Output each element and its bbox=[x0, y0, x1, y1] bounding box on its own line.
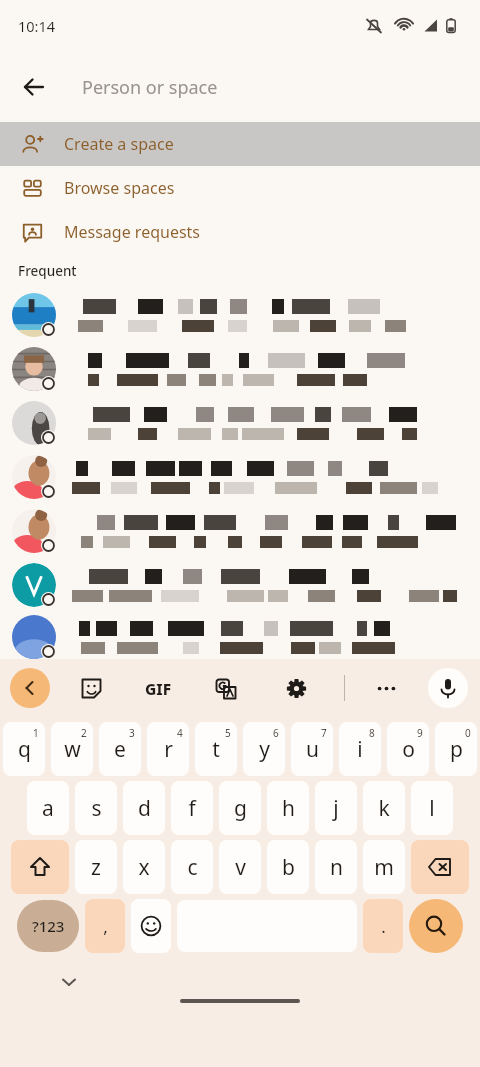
staticText: Frequent bbox=[18, 262, 77, 280]
staticText: GIF bbox=[145, 678, 172, 699]
button[interactable]: j bbox=[315, 781, 357, 835]
staticText: f bbox=[188, 794, 196, 823]
button[interactable]: l bbox=[411, 781, 453, 835]
staticText: 7 bbox=[321, 726, 327, 740]
button[interactable]: k bbox=[363, 781, 405, 835]
staticText: p bbox=[450, 735, 463, 764]
staticText: Create a space bbox=[64, 133, 174, 155]
button[interactable]: Back bbox=[8, 61, 60, 113]
staticText: s bbox=[91, 794, 102, 823]
button[interactable]: v bbox=[219, 840, 261, 894]
staticText: m bbox=[374, 853, 394, 882]
button[interactable] bbox=[0, 396, 480, 450]
staticText: c bbox=[187, 853, 198, 882]
button[interactable]: , bbox=[85, 899, 125, 953]
button[interactable]: . bbox=[363, 899, 403, 953]
staticText: Message requests bbox=[64, 221, 201, 243]
button[interactable] bbox=[0, 342, 480, 396]
staticText: n bbox=[330, 853, 343, 882]
staticText: r bbox=[164, 735, 173, 764]
other: Shift bbox=[11, 840, 69, 894]
button[interactable]: Emoji bbox=[131, 899, 171, 953]
button[interactable]: Search bbox=[409, 899, 463, 953]
button[interactable]: p bbox=[435, 722, 477, 776]
staticText: k bbox=[378, 794, 390, 823]
staticText: i bbox=[357, 735, 363, 764]
button[interactable]: More options bbox=[368, 670, 404, 706]
other: Emoji bbox=[131, 899, 171, 953]
staticText: ?123 bbox=[32, 916, 65, 936]
button[interactable]: Browse spaces bbox=[0, 166, 480, 210]
button[interactable]: x bbox=[123, 840, 165, 894]
staticText: o bbox=[402, 735, 415, 764]
button[interactable]: r bbox=[147, 722, 189, 776]
button[interactable]: q bbox=[3, 722, 45, 776]
staticText: 0 bbox=[465, 726, 471, 740]
button[interactable]: Create a space bbox=[0, 122, 480, 166]
button[interactable]: GIF bbox=[138, 668, 178, 708]
button[interactable]: s bbox=[75, 781, 117, 835]
staticText: 9 bbox=[417, 726, 423, 740]
staticText: 2 bbox=[81, 726, 87, 740]
button[interactable]: Person or space bbox=[82, 52, 480, 122]
staticText: 8 bbox=[369, 726, 375, 740]
button[interactable]: c bbox=[171, 840, 213, 894]
staticText: a bbox=[42, 794, 54, 823]
staticText: Browse spaces bbox=[64, 177, 175, 199]
other: Backspace bbox=[411, 840, 469, 894]
staticText: e bbox=[114, 735, 126, 764]
staticText: z bbox=[91, 853, 101, 882]
button[interactable]: f bbox=[171, 781, 213, 835]
button[interactable]: o bbox=[387, 722, 429, 776]
staticText: y bbox=[259, 735, 270, 764]
staticText: 6 bbox=[273, 726, 279, 740]
button[interactable]: Translate bbox=[207, 670, 243, 706]
button[interactable]: g bbox=[219, 781, 261, 835]
button[interactable]: y bbox=[243, 722, 285, 776]
staticText: 4 bbox=[177, 726, 183, 740]
button[interactable]: e bbox=[99, 722, 141, 776]
staticText: j bbox=[333, 794, 339, 823]
button[interactable]: Hide keyboard bbox=[54, 967, 84, 997]
button[interactable] bbox=[0, 612, 480, 662]
button[interactable]: z bbox=[75, 840, 117, 894]
button[interactable]: m bbox=[363, 840, 405, 894]
button[interactable]: a bbox=[27, 781, 69, 835]
staticText: g bbox=[234, 794, 247, 823]
button[interactable]: Message requests bbox=[0, 210, 480, 254]
staticText: . bbox=[381, 915, 386, 938]
button[interactable] bbox=[0, 504, 480, 558]
button[interactable]: Voice input bbox=[428, 668, 468, 708]
button[interactable]: u bbox=[291, 722, 333, 776]
button[interactable]: Shift bbox=[11, 840, 69, 894]
button[interactable]: Backspace bbox=[411, 840, 469, 894]
staticText: q bbox=[18, 735, 31, 764]
button[interactable]: h bbox=[267, 781, 309, 835]
button[interactable]: Settings bbox=[278, 670, 314, 706]
staticText: l bbox=[429, 794, 435, 823]
button[interactable]: t bbox=[195, 722, 237, 776]
button[interactable]: Stickers bbox=[73, 670, 109, 706]
staticText: w bbox=[64, 735, 81, 764]
button[interactable] bbox=[0, 288, 480, 342]
staticText: 3 bbox=[129, 726, 135, 740]
staticText: u bbox=[306, 735, 319, 764]
button[interactable]: i bbox=[339, 722, 381, 776]
staticText: , bbox=[103, 915, 108, 938]
staticText: 5 bbox=[225, 726, 231, 740]
staticText: x bbox=[138, 853, 150, 882]
staticText: b bbox=[282, 853, 295, 882]
button[interactable]: w bbox=[51, 722, 93, 776]
button[interactable]: ?123 bbox=[17, 900, 79, 952]
button[interactable]: Back bbox=[10, 668, 50, 708]
staticText: Person or space bbox=[82, 75, 218, 100]
staticText: t bbox=[212, 735, 220, 764]
staticText: 10:14 bbox=[18, 16, 56, 36]
button[interactable]: d bbox=[123, 781, 165, 835]
button[interactable] bbox=[0, 450, 480, 504]
button[interactable]: n bbox=[315, 840, 357, 894]
button[interactable]: b bbox=[267, 840, 309, 894]
staticText: 1 bbox=[33, 726, 39, 740]
button[interactable] bbox=[0, 558, 480, 612]
